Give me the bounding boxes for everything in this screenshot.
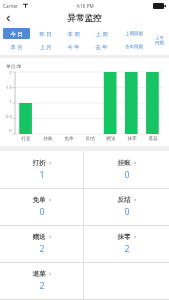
- staticText: 0.5: [6, 114, 12, 120]
- staticText: 去年同期: [125, 44, 143, 50]
- button[interactable]: 抹零: [84, 226, 169, 262]
- button[interactable]: 今 日: [3, 28, 30, 39]
- staticText: 退菜: [32, 270, 46, 278]
- button[interactable]: 上 周: [88, 28, 114, 39]
- staticText: 今 年: [67, 43, 80, 50]
- staticText: 异常监控: [67, 13, 102, 24]
- staticText: Carrier: [3, 3, 18, 9]
- button[interactable]: 本 周: [60, 28, 86, 39]
- staticText: 0: [39, 206, 45, 218]
- staticText: 2: [124, 243, 130, 255]
- staticText: 1: [39, 169, 45, 181]
- staticText: 0: [9, 128, 12, 134]
- staticText: 本 月: [10, 43, 23, 50]
- staticText: 上 周: [95, 30, 108, 37]
- staticText: 同期: [155, 40, 164, 45]
- staticText: 上 月: [39, 43, 52, 50]
- button[interactable]: 本 月: [3, 41, 30, 52]
- button[interactable]: 今 年: [60, 41, 86, 52]
- staticText: 赠送: [106, 135, 116, 141]
- button[interactable]: 昨 日: [32, 28, 58, 39]
- staticText: 昨 日: [39, 30, 52, 37]
- staticText: 1.5: [6, 85, 12, 91]
- button[interactable]: 上月: [153, 28, 166, 52]
- button[interactable]: 挂账: [84, 151, 169, 188]
- button[interactable]: 打折: [0, 151, 84, 188]
- button[interactable]: 免单: [0, 189, 84, 225]
- staticText: 上月: [155, 35, 164, 40]
- button[interactable]: Back: [0, 11, 16, 25]
- staticText: 反结: [117, 196, 131, 204]
- staticText: 0: [124, 206, 130, 218]
- staticText: 免单: [64, 135, 74, 141]
- staticText: 打折: [32, 159, 46, 167]
- staticText: 本 周: [67, 30, 80, 37]
- staticText: 0: [124, 169, 130, 181]
- staticText: 2: [9, 70, 12, 76]
- staticText: 今 日: [10, 30, 23, 37]
- staticText: 上周同期: [125, 31, 143, 37]
- staticText: 单位:单: [6, 63, 22, 69]
- button[interactable]: 退菜: [0, 263, 84, 299]
- staticText: 2: [39, 243, 45, 255]
- staticText: 反结: [85, 135, 95, 141]
- staticText: 去 年: [95, 43, 108, 50]
- staticText: 4:16 PM: [76, 3, 94, 9]
- button[interactable]: 赠送: [0, 226, 84, 262]
- button[interactable]: 去年同期: [116, 41, 151, 52]
- button[interactable]: 反结: [84, 189, 169, 225]
- staticText: 赠送: [32, 233, 46, 241]
- button[interactable]: 上周同期: [116, 28, 151, 39]
- staticText: 抹零: [127, 135, 137, 141]
- staticText: 免单: [32, 196, 46, 204]
- button[interactable]: 去 年: [88, 41, 114, 52]
- staticText: 2: [39, 280, 45, 292]
- staticText: 退菜: [148, 135, 158, 141]
- staticText: 挂账: [43, 135, 53, 141]
- staticText: 打折: [21, 135, 31, 141]
- staticText: 抹零: [117, 233, 131, 241]
- staticText: 1: [9, 99, 12, 105]
- staticText: 挂账: [117, 159, 131, 167]
- button[interactable]: 上 月: [32, 41, 58, 52]
